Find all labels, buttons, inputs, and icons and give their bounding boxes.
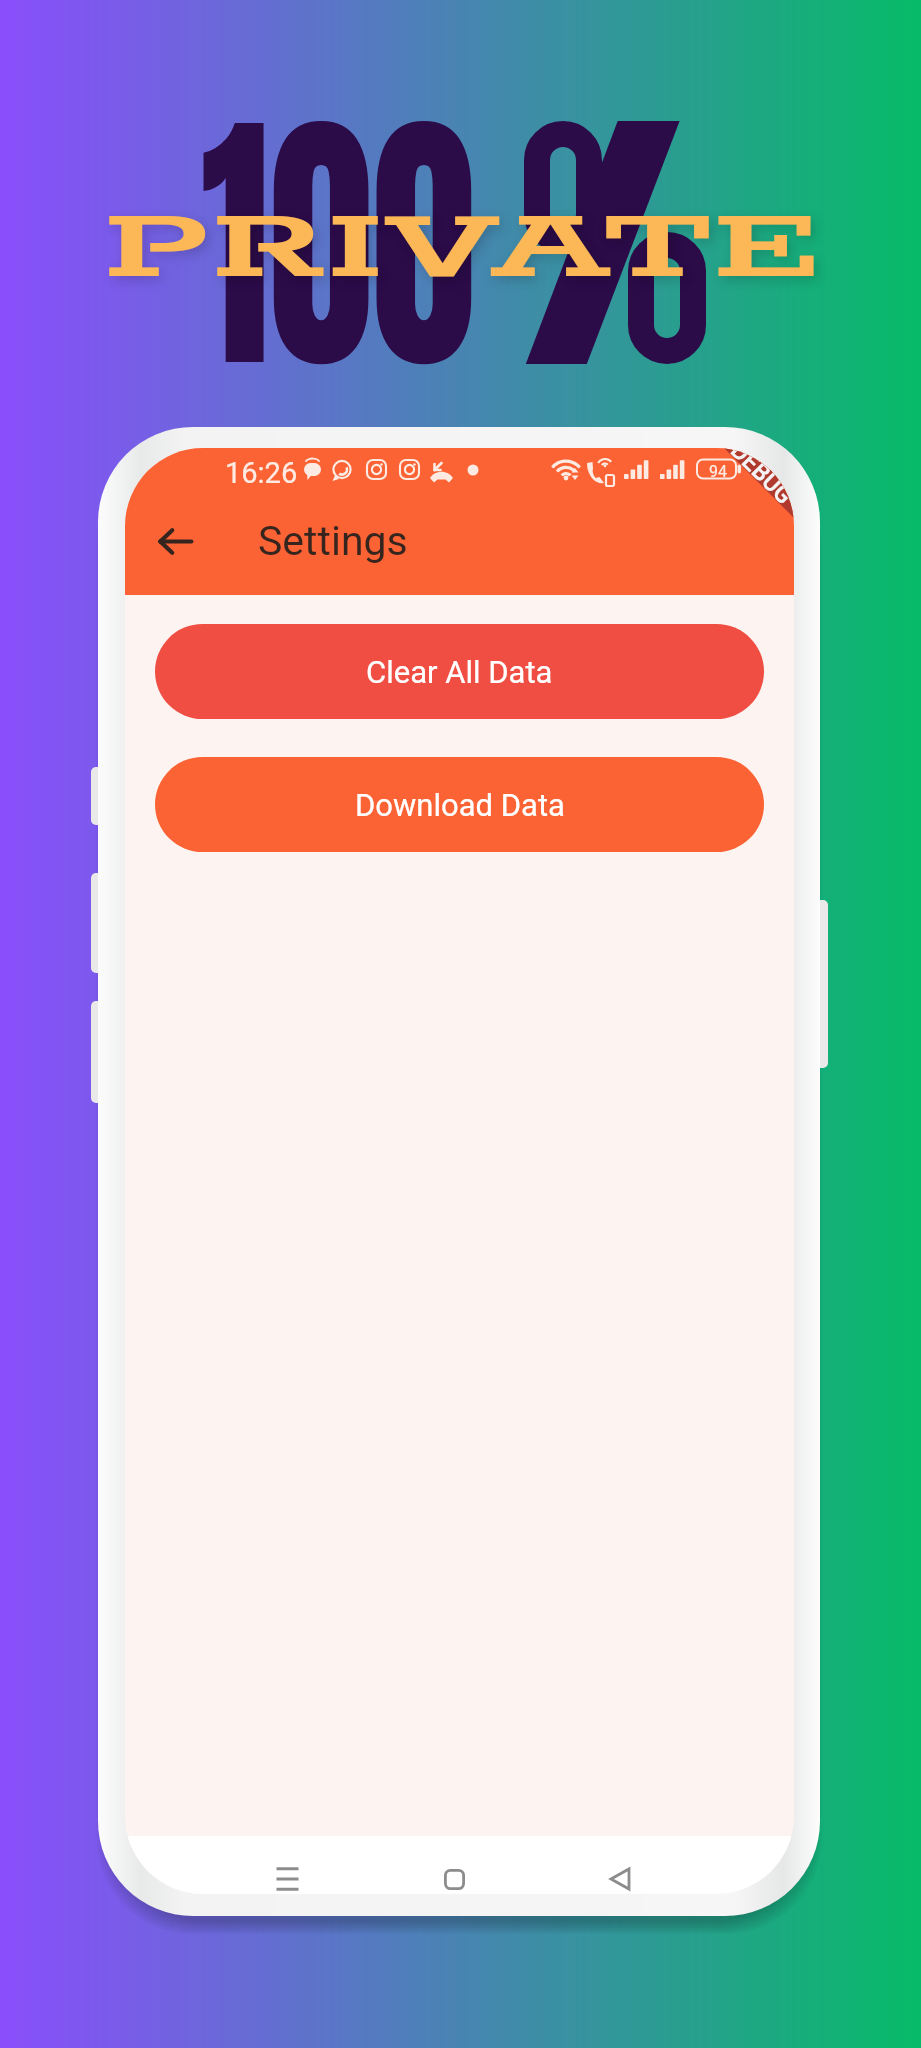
staticText: Download Data bbox=[355, 787, 565, 823]
staticText: 94 bbox=[709, 462, 727, 481]
button[interactable]: Back bbox=[590, 1850, 650, 1894]
button[interactable]: Home bbox=[424, 1850, 484, 1894]
staticText: Clear All Data bbox=[366, 654, 553, 690]
button[interactable]: Back bbox=[141, 507, 209, 575]
staticText: 100 bbox=[201, 35, 475, 453]
button[interactable]: Clear All Data bbox=[155, 624, 764, 719]
button[interactable]: Download Data bbox=[155, 757, 764, 852]
button[interactable]: Recent apps bbox=[257, 1850, 317, 1894]
staticText: PRIVATE bbox=[103, 192, 821, 309]
staticText: Settings bbox=[258, 517, 408, 565]
staticText: DEBUG bbox=[726, 448, 794, 510]
staticText: 16:26 bbox=[225, 456, 298, 490]
